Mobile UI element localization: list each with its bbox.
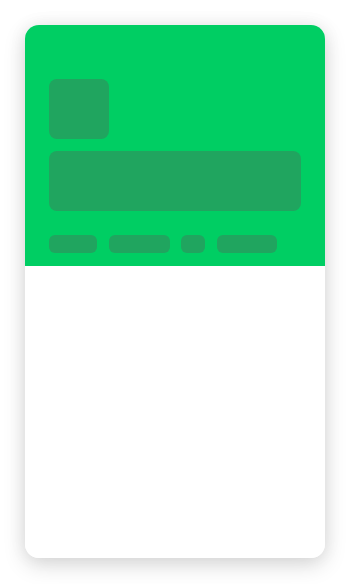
button[interactable]: Loading content card <box>25 25 325 558</box>
